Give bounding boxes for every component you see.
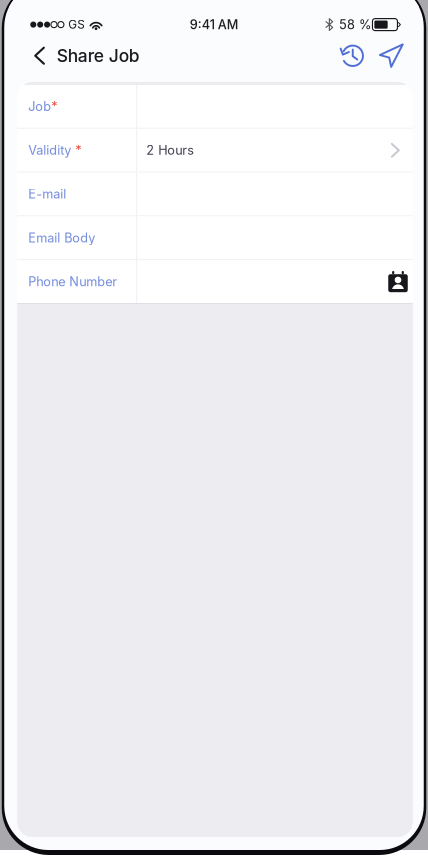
staticText: Email Body: [28, 230, 95, 245]
staticText: Job: [28, 99, 51, 114]
button[interactable]: Send: [373, 42, 410, 69]
staticText: 2 Hours: [146, 142, 194, 158]
staticText: 9:41 AM: [190, 17, 239, 32]
staticText: 58 %: [339, 17, 371, 32]
staticText: Validity: [28, 142, 71, 158]
button[interactable]: Share Job: [4, 42, 152, 69]
staticText: *: [51, 99, 57, 114]
button[interactable]: Job: [17, 85, 413, 128]
button[interactable]: Validity: [17, 129, 413, 172]
button[interactable]: E-mail: [17, 173, 413, 215]
button[interactable]: Phone Number: [17, 260, 413, 303]
staticText: Phone Number: [28, 274, 117, 289]
button[interactable]: History: [333, 42, 373, 69]
staticText: GS: [68, 17, 85, 32]
staticText: *: [71, 142, 81, 158]
staticText: E-mail: [28, 186, 66, 202]
staticText: Share Job: [57, 45, 140, 66]
button[interactable]: Email Body: [17, 216, 413, 259]
